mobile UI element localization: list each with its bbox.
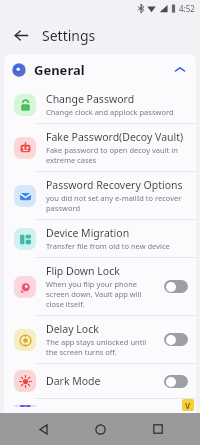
staticText: Fake password to open decoy vault in ext… bbox=[46, 145, 188, 165]
staticText: Settings bbox=[42, 26, 96, 45]
button[interactable]: Back bbox=[28, 414, 58, 444]
staticText: V bbox=[185, 400, 191, 411]
button[interactable]: Flip Down Lock bbox=[4, 258, 196, 315]
staticText: Transfer file from old to new device bbox=[46, 241, 170, 251]
button[interactable]: Delay Lock bbox=[4, 316, 196, 363]
button[interactable]: Home bbox=[85, 414, 115, 444]
staticText: The app stays unlocked until the screen … bbox=[46, 337, 158, 357]
button[interactable]: Flip Down Lock toggle bbox=[164, 280, 188, 293]
button[interactable]: Fake Password(Decoy Vault) bbox=[4, 124, 196, 171]
staticText: 4:52 bbox=[179, 3, 195, 14]
staticText: Device Migration bbox=[46, 226, 130, 240]
staticText: Password Recovery Options bbox=[46, 178, 183, 192]
button[interactable]: Password Recovery Options bbox=[4, 172, 196, 219]
button[interactable]: Delay Lock toggle bbox=[164, 333, 188, 346]
staticText: When you flip your phone screen down, Va… bbox=[46, 279, 158, 309]
staticText: Dark Mode bbox=[46, 374, 101, 388]
staticText: Flip Down Lock bbox=[46, 264, 120, 278]
button[interactable]: General bbox=[4, 54, 196, 86]
button[interactable]: Cloud Backup bbox=[4, 399, 196, 413]
staticText: Change clock and applock password bbox=[46, 107, 174, 117]
button[interactable]: Dark Mode toggle bbox=[164, 375, 188, 388]
staticText: Delay Lock bbox=[46, 322, 99, 336]
staticText: General bbox=[34, 61, 85, 79]
button[interactable]: Device Migration bbox=[4, 220, 196, 257]
button[interactable]: Recents bbox=[143, 414, 173, 444]
button[interactable]: Dark Mode bbox=[4, 364, 196, 398]
button[interactable]: Change Password bbox=[4, 86, 196, 123]
staticText: Fake Password(Decoy Vault) bbox=[46, 130, 184, 144]
staticText: Change Password bbox=[46, 92, 135, 106]
staticText: you did not set any e-mailId to recover … bbox=[46, 193, 188, 213]
button[interactable]: Back bbox=[8, 22, 34, 48]
